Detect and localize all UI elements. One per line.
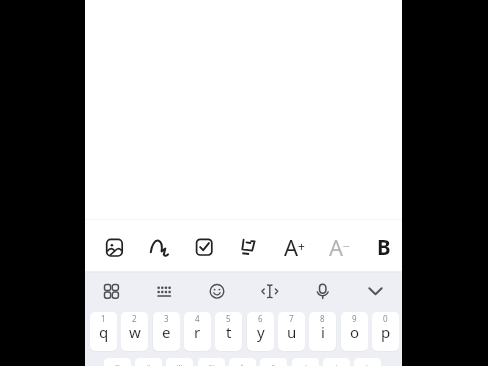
staticText: 4	[195, 313, 200, 324]
button[interactable]: *	[292, 358, 319, 366]
staticText: w	[129, 322, 141, 342]
staticText: ^	[240, 363, 245, 366]
button[interactable]	[191, 272, 244, 310]
staticText: 2	[132, 313, 137, 324]
button[interactable]: B	[362, 223, 406, 270]
button[interactable]	[85, 272, 138, 310]
staticText: y	[257, 322, 265, 342]
button[interactable]: 9	[341, 312, 368, 351]
button[interactable]: #	[135, 358, 162, 366]
button[interactable]: 2	[121, 312, 148, 351]
staticText: q	[99, 322, 109, 342]
button[interactable]: 8	[309, 312, 336, 351]
staticText: *	[304, 363, 308, 366]
button[interactable]: 5	[215, 312, 242, 351]
button[interactable]: 1	[90, 312, 117, 351]
staticText: 0	[383, 313, 388, 324]
staticText: &	[271, 363, 277, 366]
staticText: B	[377, 233, 391, 261]
staticText: t	[226, 322, 232, 342]
staticText: i	[321, 322, 325, 342]
button[interactable]: 0	[372, 312, 399, 351]
staticText: 3	[164, 313, 169, 324]
staticText: 6	[258, 313, 263, 324]
button[interactable]: 3	[153, 312, 180, 351]
button[interactable]	[138, 272, 191, 310]
button[interactable]	[243, 272, 296, 310]
staticText: @	[114, 363, 121, 366]
button[interactable]	[93, 223, 137, 270]
staticText: r	[194, 322, 201, 342]
button[interactable]: 4	[184, 312, 211, 351]
button[interactable]: ₩	[166, 358, 193, 366]
staticText: (	[335, 363, 338, 366]
staticText: #	[146, 363, 151, 366]
button[interactable]	[225, 223, 269, 270]
button[interactable]: A+	[272, 223, 316, 270]
button[interactable]: 6	[247, 312, 274, 351]
staticText: )	[366, 363, 369, 366]
staticText: 8	[320, 313, 325, 324]
button[interactable]: @	[104, 358, 131, 366]
button[interactable]	[349, 272, 402, 310]
button[interactable]: &	[260, 358, 287, 366]
staticText: 9	[352, 313, 357, 324]
button[interactable]	[137, 223, 181, 270]
staticText: %	[209, 363, 215, 366]
button[interactable]	[183, 223, 227, 270]
staticText: p	[381, 322, 391, 342]
staticText: e	[162, 322, 171, 342]
button[interactable]: 7	[278, 312, 305, 351]
staticText: 5	[226, 313, 231, 324]
button[interactable]: A−	[317, 223, 361, 270]
button[interactable]: (	[323, 358, 350, 366]
button[interactable]	[296, 272, 349, 310]
staticText: u	[287, 322, 297, 342]
staticText: A+	[284, 232, 305, 262]
staticText: ₩	[177, 363, 182, 366]
staticText: A−	[329, 232, 350, 262]
staticText: 7	[289, 313, 294, 324]
button[interactable]: ^	[229, 358, 256, 366]
button[interactable]: )	[354, 358, 381, 366]
staticText: 1	[101, 313, 106, 324]
staticText: o	[350, 322, 360, 342]
button[interactable]: %	[198, 358, 225, 366]
